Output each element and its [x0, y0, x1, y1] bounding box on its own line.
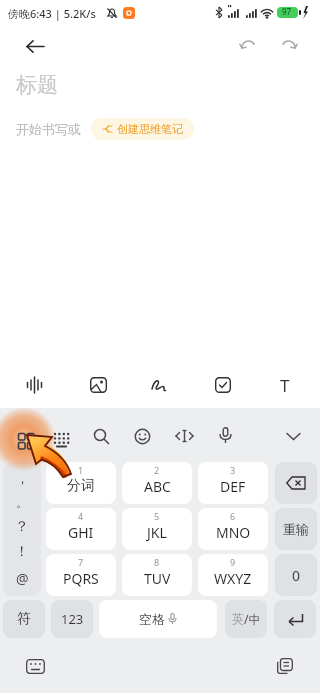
staticText: WXYZ: [214, 569, 252, 588]
button[interactable]: 创建思维笔记: [91, 118, 194, 140]
button[interactable]: [17, 432, 36, 451]
button[interactable]: 9: [198, 554, 268, 596]
staticText: 创建思维笔记: [117, 122, 183, 136]
staticText: 3: [230, 464, 236, 476]
staticText: ！: [15, 543, 29, 561]
button[interactable]: [273, 31, 303, 61]
staticText: @: [16, 569, 29, 588]
button[interactable]: [175, 429, 194, 443]
staticText: TUV: [144, 569, 171, 588]
button[interactable]: 8: [122, 554, 192, 596]
staticText: 2: [154, 464, 160, 476]
button[interactable]: [275, 462, 317, 504]
button[interactable]: 重输: [275, 508, 317, 550]
button[interactable]: 3: [198, 462, 268, 504]
button[interactable]: [202, 365, 244, 405]
button[interactable]: 1: [46, 462, 116, 504]
button[interactable]: ，: [3, 462, 41, 596]
button[interactable]: [14, 365, 56, 405]
button[interactable]: [270, 651, 300, 681]
staticText: 1: [78, 464, 84, 476]
staticText: 6: [230, 510, 236, 522]
staticText: 0: [292, 566, 301, 585]
staticText: 5: [154, 510, 160, 522]
button[interactable]: 英: [225, 600, 267, 638]
button[interactable]: 空格: [99, 600, 217, 638]
staticText: 8: [154, 556, 160, 568]
button[interactable]: 5: [122, 508, 192, 550]
staticText: T: [280, 374, 290, 397]
button[interactable]: 123: [51, 600, 93, 638]
staticText: 97: [282, 6, 292, 17]
button[interactable]: [20, 651, 50, 681]
button[interactable]: 4: [46, 508, 116, 550]
staticText: ，: [16, 470, 29, 486]
staticText: 4: [78, 510, 84, 522]
staticText: 傍晚6:43 | 5.2K/s: [8, 6, 96, 21]
staticText: ？: [15, 518, 29, 536]
staticText: GHI: [68, 523, 94, 542]
staticText: 空格: [139, 611, 165, 627]
staticText: /中: [244, 611, 261, 627]
button[interactable]: [93, 428, 110, 445]
staticText: 9: [230, 556, 236, 568]
button[interactable]: T: [264, 365, 306, 405]
button[interactable]: [77, 365, 119, 405]
staticText: DEF: [220, 477, 246, 496]
button[interactable]: [219, 427, 232, 444]
staticText: 英: [232, 611, 244, 626]
button[interactable]: [53, 432, 71, 448]
staticText: 分词: [67, 477, 95, 495]
button[interactable]: 2: [122, 462, 192, 504]
button[interactable]: 6: [198, 508, 268, 550]
staticText: 7: [78, 556, 84, 568]
button[interactable]: [233, 31, 263, 61]
staticText: 123: [61, 610, 84, 628]
staticText: ABC: [144, 477, 171, 496]
staticText: 标题: [16, 72, 58, 98]
staticText: 开始书写或: [16, 121, 81, 137]
staticText: MNO: [216, 523, 251, 542]
button[interactable]: [17, 432, 36, 451]
staticText: 符: [17, 610, 31, 628]
staticText: 。: [16, 494, 29, 510]
staticText: JKL: [147, 523, 167, 542]
button[interactable]: 0: [275, 554, 317, 596]
button[interactable]: [286, 432, 301, 441]
button[interactable]: [274, 600, 316, 638]
staticText: 重输: [283, 521, 309, 537]
button[interactable]: [16, 26, 54, 66]
button[interactable]: [139, 365, 181, 405]
staticText: PQRS: [63, 569, 99, 588]
button[interactable]: [134, 428, 151, 445]
button[interactable]: 符: [3, 600, 45, 638]
button[interactable]: 7: [46, 554, 116, 596]
